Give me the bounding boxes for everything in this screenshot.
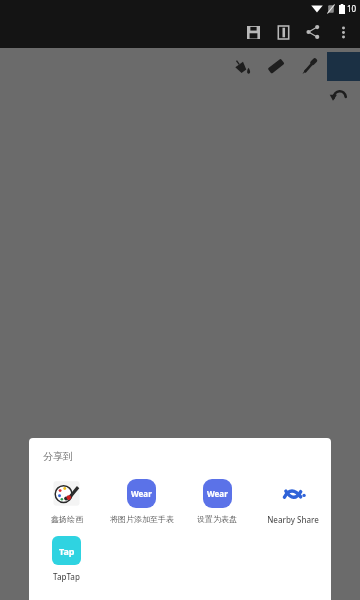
staticText: 鑫扬绘画 [51,514,83,524]
staticText: Wear [207,488,228,499]
staticText: 设置为表盘 [197,514,237,524]
button[interactable]: Save [238,17,268,47]
staticText: 将图片添加至手表 [110,514,174,524]
button[interactable]: Fill bucket [225,49,259,83]
button[interactable]: Eraser [259,49,293,83]
button[interactable]: Wear [179,479,255,524]
staticText: Tap [59,545,75,557]
button[interactable]: Undo [325,80,351,106]
staticText: 分享到 [43,450,73,463]
staticText: TapTap [53,571,80,582]
staticText: Nearby Share [267,514,319,525]
button[interactable]: Nearby Share [255,479,331,525]
staticText: 10 [347,3,357,14]
button[interactable]: Layers [268,17,298,47]
button[interactable]: Tap [29,536,104,582]
button[interactable]: More options [328,17,358,47]
button[interactable]: Color picker [293,49,327,83]
button[interactable]: 鑫扬绘画 [29,479,104,524]
button[interactable]: Wear [104,479,179,524]
staticText: Wear [131,488,152,499]
button[interactable]: Share [298,17,328,47]
